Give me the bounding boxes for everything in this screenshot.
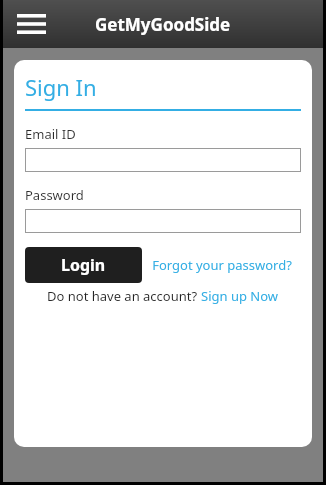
staticText: Do not have an account? [47,287,201,305]
staticText: Login [61,254,106,276]
staticText: Password [25,186,84,204]
button[interactable] [25,148,301,172]
button[interactable]: Forgot your password? [142,256,301,274]
staticText: Email ID [25,125,76,143]
button[interactable]: Open navigation menu [12,8,50,40]
staticText: Sign In [25,72,97,102]
button[interactable] [25,209,301,233]
button[interactable]: Sign up Now [201,287,279,305]
button[interactable]: Login [25,247,142,283]
staticText: Sign up Now [201,287,279,305]
staticText: Forgot your password? [152,256,292,274]
staticText: GetMyGoodSide [95,13,231,36]
